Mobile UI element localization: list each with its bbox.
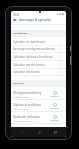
button[interactable]: Back xyxy=(17,127,27,137)
staticText: Aanvragen werkgeversverklaring xyxy=(13,47,59,51)
button[interactable]: Home xyxy=(34,127,44,137)
staticText: Overzicht xyxy=(13,82,24,85)
staticText: Aanvragen & uploaden xyxy=(19,18,52,22)
staticText: Uploaden en downloaden xyxy=(13,40,59,44)
button[interactable]: Aanvragen & uploaden xyxy=(11,16,66,24)
staticText: Afgerond xyxy=(50,95,59,98)
staticText: Afgerond xyxy=(50,119,59,122)
staticText: Afgerond xyxy=(50,107,59,110)
staticText: Uploaden loonstrook xyxy=(13,70,59,74)
staticText: Uploaden diploma of certificaat xyxy=(13,55,59,59)
button[interactable]: Werkgeversverklaring xyxy=(11,87,66,99)
button[interactable]: Recent apps xyxy=(50,127,60,137)
button[interactable]: Diploma of certificaat xyxy=(11,99,66,111)
staticText: 30 september 2023 xyxy=(13,120,33,123)
button[interactable]: Uploaden en downloaden xyxy=(11,38,66,46)
staticText: Documenten xyxy=(13,32,28,35)
button[interactable]: Uploaden loonstrook xyxy=(11,68,66,76)
button[interactable]: Aanvragen werkgeversverklaring xyxy=(11,45,66,53)
button[interactable]: Uploaden diploma of certificaat xyxy=(11,53,66,61)
button[interactable]: Uploaden van declaraties xyxy=(11,61,66,69)
staticText: Diploma of certificaat xyxy=(13,103,41,107)
staticText: Declaratie reiskosten xyxy=(13,115,41,119)
staticText: 09:41 xyxy=(13,13,20,16)
staticText: Werkgeversverklaring xyxy=(13,91,42,95)
staticText: 3 oktober 2023 xyxy=(13,108,29,111)
button[interactable]: Declaratie reiskosten xyxy=(11,111,66,123)
staticText: Uploaden van declaraties xyxy=(13,63,59,67)
staticText: 8 oktober 2023 xyxy=(13,96,29,99)
